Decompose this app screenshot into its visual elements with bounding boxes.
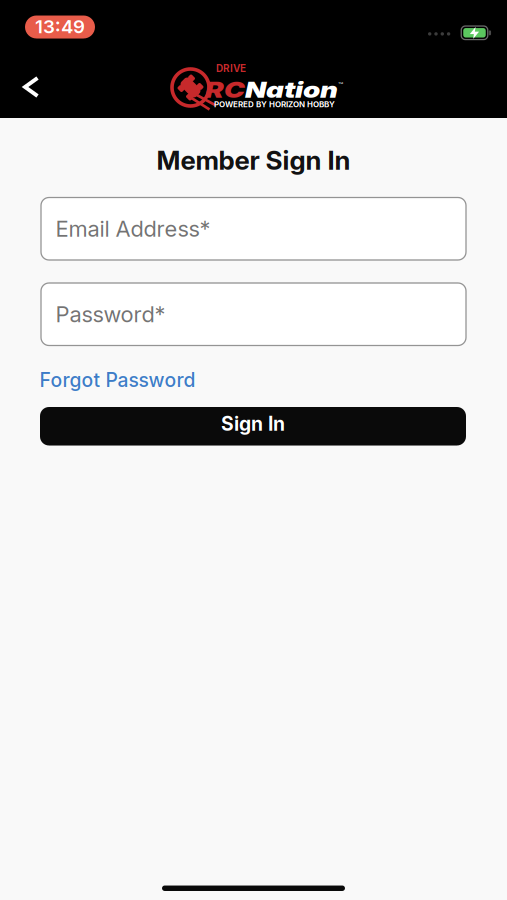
button[interactable]: Forgot Password [37, 365, 197, 395]
button[interactable]: Password* [41, 283, 466, 345]
staticText: 13:49 [35, 15, 85, 38]
button[interactable]: 13:49 [25, 15, 95, 38]
staticText: Member Sign In [156, 144, 350, 176]
button[interactable]: Sign In [40, 407, 466, 445]
staticText: Password* [55, 301, 165, 327]
staticText: Forgot Password [39, 368, 195, 392]
button[interactable] [17, 68, 45, 106]
staticText: RC [205, 77, 245, 111]
button[interactable]: Email Address* [41, 197, 466, 260]
staticText: Email Address* [55, 215, 210, 242]
staticText: DRIVE [216, 62, 246, 74]
staticText: Nation [245, 77, 338, 111]
staticText: POWERED BY HORIZON HOBBY [214, 99, 335, 109]
staticText: Sign In [221, 412, 285, 435]
staticText: ™ [338, 82, 343, 93]
